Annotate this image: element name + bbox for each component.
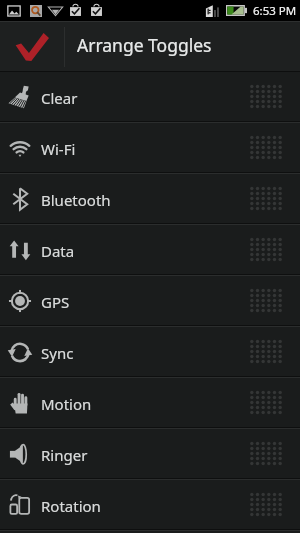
- button[interactable]: Clear: [0, 72, 300, 121]
- staticText: Data: [41, 241, 75, 261]
- button[interactable]: Wi-Fi: [0, 123, 300, 172]
- staticText: Wi-Fi: [41, 139, 76, 159]
- staticText: Rotation: [41, 496, 101, 516]
- button[interactable]: Motion: [0, 378, 300, 427]
- staticText: Ringer: [41, 445, 88, 465]
- staticText: GPS: [41, 292, 70, 312]
- staticText: Motion: [41, 394, 92, 414]
- staticText: Sync: [41, 343, 74, 363]
- button[interactable]: Bluetooth: [0, 174, 300, 223]
- staticText: 6:53 PM: [253, 3, 297, 19]
- staticText: Arrange Toggles: [77, 33, 212, 57]
- button[interactable]: Sync: [0, 327, 300, 376]
- button[interactable]: Data: [0, 225, 300, 274]
- button[interactable]: Rotation: [0, 480, 300, 529]
- button[interactable]: App icon, up: [0, 21, 64, 72]
- staticText: Bluetooth: [41, 190, 111, 210]
- staticText: Clear: [41, 88, 78, 108]
- button[interactable]: Ringer: [0, 429, 300, 478]
- button[interactable]: GPS: [0, 276, 300, 325]
